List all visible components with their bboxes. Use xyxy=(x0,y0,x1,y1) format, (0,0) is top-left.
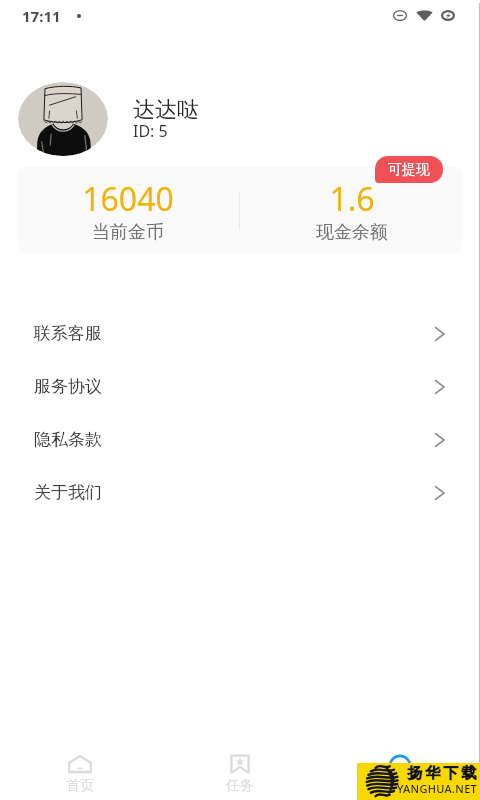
staticText: 扬 xyxy=(406,764,424,783)
button[interactable]: 可提现 xyxy=(375,156,443,183)
staticText: 隐私条款 xyxy=(34,429,102,450)
button[interactable]: 隐私条款 xyxy=(0,413,480,466)
staticText: 下 xyxy=(442,764,460,783)
staticText: 16040 xyxy=(82,177,174,221)
staticText: 当前金币 xyxy=(92,221,164,244)
button[interactable]: 任务 xyxy=(160,747,320,800)
staticText: 我的 xyxy=(386,777,414,795)
staticText: 达达哒 xyxy=(133,96,199,124)
staticText: 联系客服 xyxy=(34,323,102,344)
staticText: 可提现 xyxy=(388,161,430,179)
button[interactable]: 联系客服 xyxy=(0,307,480,360)
staticText: 任务 xyxy=(226,777,254,795)
staticText: 现金余额 xyxy=(316,221,388,244)
staticText: ID: 5 xyxy=(133,120,168,142)
button[interactable]: 服务协议 xyxy=(0,360,480,413)
staticText: 首页 xyxy=(66,777,94,795)
button[interactable]: 首页 xyxy=(0,747,160,800)
staticText: 1.6 xyxy=(329,177,375,221)
staticText: 17:11 xyxy=(22,6,61,26)
button[interactable]: 我的 xyxy=(320,747,480,800)
staticText: 载 xyxy=(460,764,478,783)
staticText: 华 xyxy=(424,764,442,783)
staticText: 服务协议 xyxy=(34,376,102,397)
staticText: YANGHUA.NET xyxy=(397,781,478,796)
button[interactable]: 16040 xyxy=(17,167,463,253)
staticText: 关于我们 xyxy=(34,482,102,503)
button[interactable]: 关于我们 xyxy=(0,466,480,519)
